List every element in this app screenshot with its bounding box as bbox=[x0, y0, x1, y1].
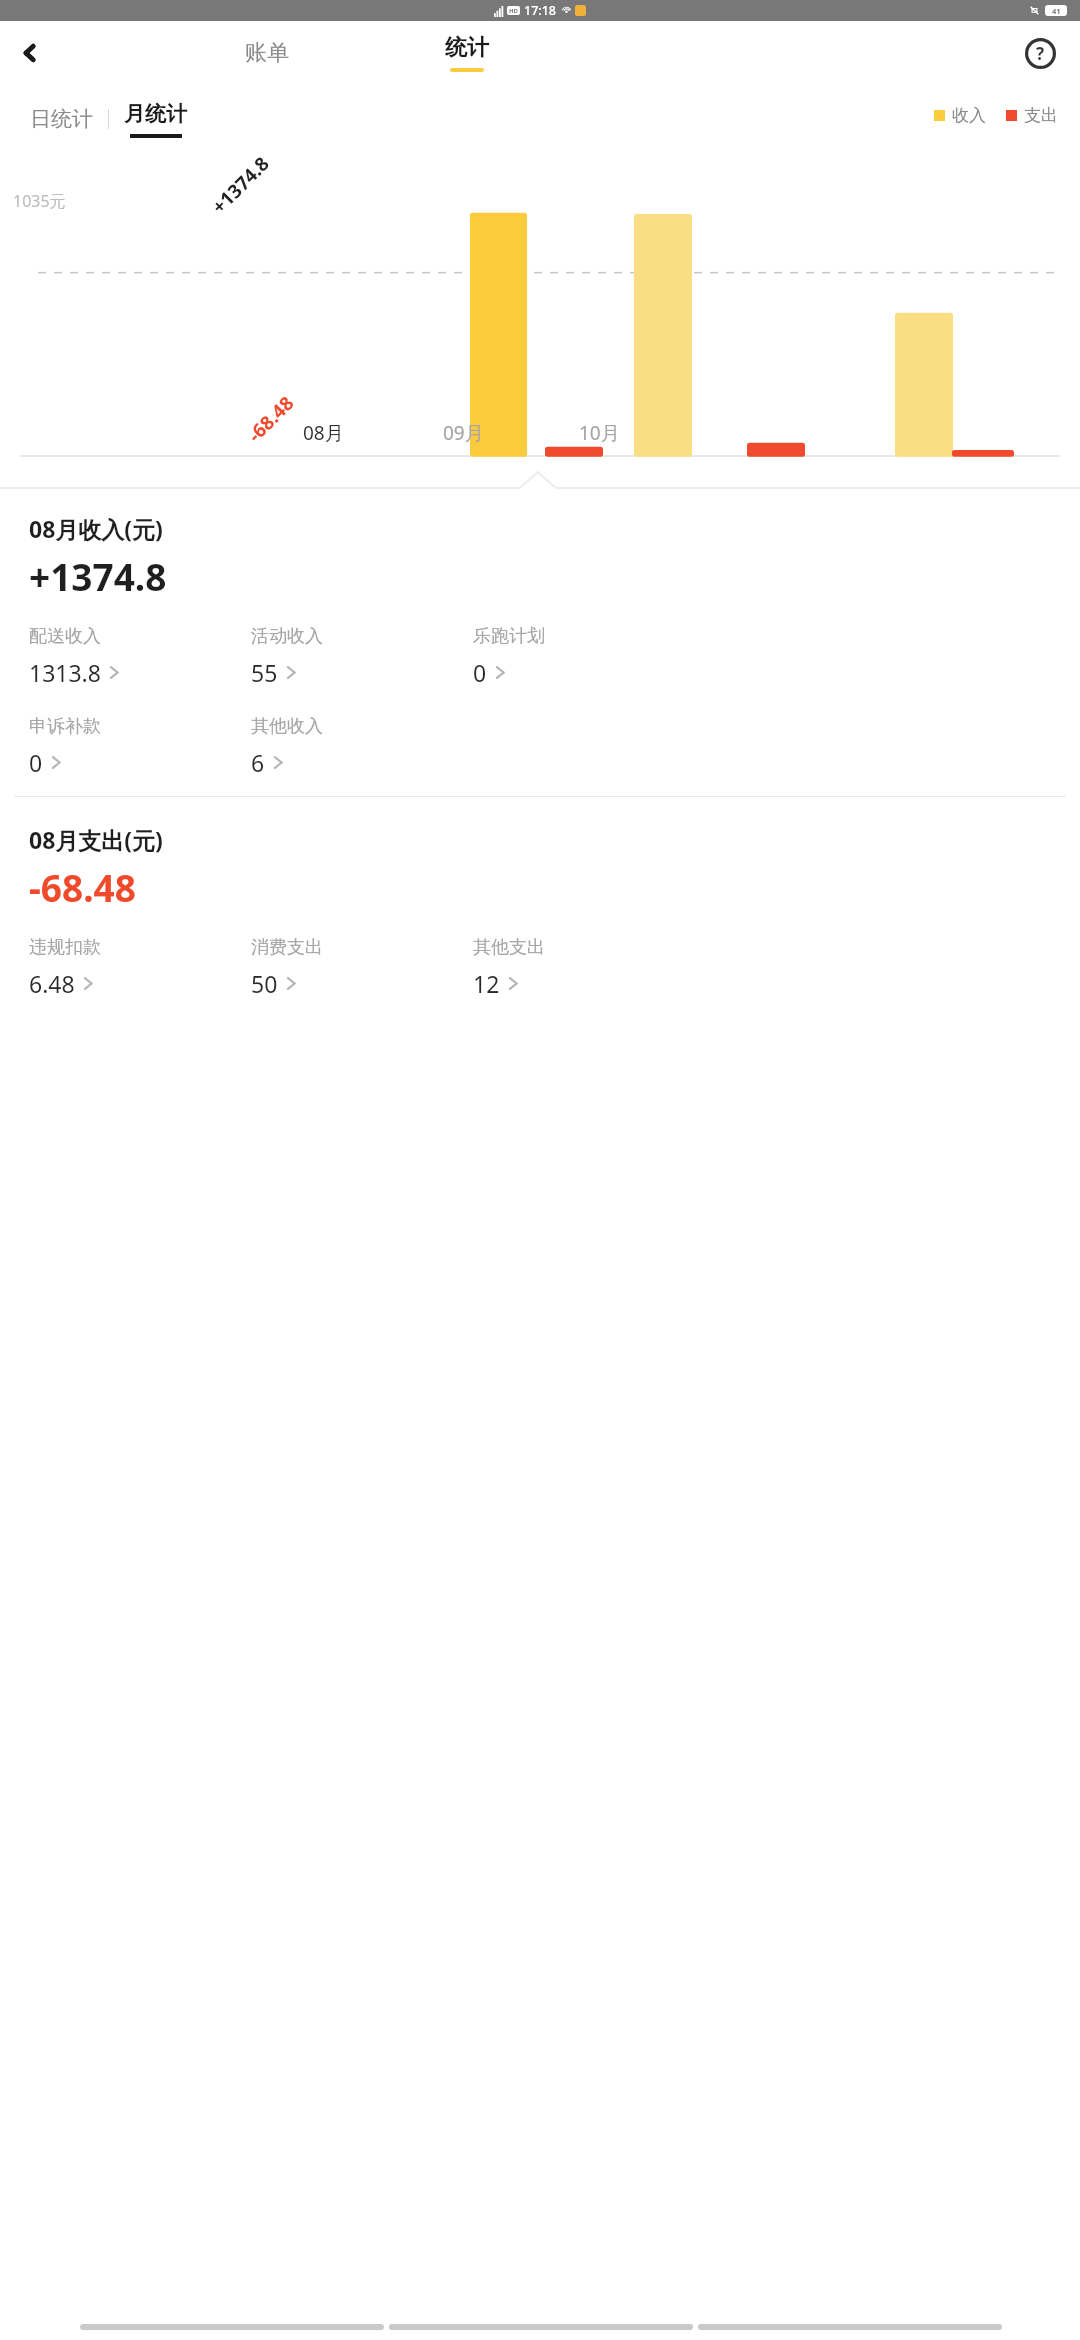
staticText: 08月收入(元) bbox=[29, 513, 163, 544]
button[interactable]: 配送收入 bbox=[29, 623, 251, 690]
button[interactable]: Back bbox=[6, 29, 54, 77]
staticText: 0 bbox=[473, 657, 487, 688]
staticText: -68.48 bbox=[29, 862, 136, 912]
staticText: 日统计 bbox=[30, 106, 93, 132]
staticText: 其他支出 bbox=[473, 936, 545, 959]
staticText: 6.48 bbox=[29, 968, 75, 999]
staticText: +1374.8 bbox=[206, 151, 275, 219]
staticText: 活动收入 bbox=[251, 625, 323, 648]
button[interactable]: Help bbox=[1018, 31, 1062, 75]
staticText: 其他收入 bbox=[251, 715, 323, 738]
button[interactable]: 其他支出 bbox=[473, 934, 695, 1001]
staticText: 消费支出 bbox=[251, 936, 323, 959]
staticText: 收入 bbox=[952, 105, 986, 126]
staticText: 乐跑计划 bbox=[473, 625, 545, 648]
staticText: 41 bbox=[1052, 6, 1061, 16]
staticText: 违规扣款 bbox=[29, 936, 101, 959]
staticText: ? bbox=[1036, 42, 1045, 65]
button[interactable]: 消费支出 bbox=[251, 934, 473, 1001]
staticText: 08月支出(元) bbox=[29, 824, 163, 855]
staticText: 配送收入 bbox=[29, 625, 101, 648]
button[interactable]: 10月 bbox=[553, 420, 645, 446]
staticText: 12 bbox=[473, 968, 500, 999]
button[interactable]: 08月 bbox=[277, 420, 369, 446]
staticText: 55 bbox=[251, 657, 278, 688]
staticText: 申诉补款 bbox=[29, 715, 101, 738]
button[interactable]: 乐跑计划 bbox=[473, 623, 695, 690]
button[interactable]: 月统计 bbox=[120, 101, 191, 138]
staticText: 10月 bbox=[579, 420, 620, 446]
button[interactable]: 账单 bbox=[233, 31, 301, 75]
staticText: 支出 bbox=[1024, 105, 1058, 126]
button[interactable]: 日统计 bbox=[26, 100, 97, 138]
button[interactable]: 其他收入 bbox=[251, 713, 473, 780]
staticText: 0 bbox=[29, 747, 43, 778]
staticText: 月统计 bbox=[124, 101, 187, 127]
button[interactable]: 活动收入 bbox=[251, 623, 473, 690]
staticText: 1313.8 bbox=[29, 657, 101, 688]
staticText: -68.48 bbox=[242, 390, 299, 448]
staticText: 6 bbox=[251, 747, 265, 778]
staticText: 统计 bbox=[445, 34, 489, 62]
button[interactable]: 09月 bbox=[417, 420, 509, 446]
staticText: 50 bbox=[251, 968, 278, 999]
staticText: 09月 bbox=[443, 420, 484, 446]
staticText: +1374.8 bbox=[29, 551, 167, 601]
staticText: 账单 bbox=[245, 39, 289, 67]
staticText: 08月 bbox=[303, 420, 344, 446]
button[interactable]: 申诉补款 bbox=[29, 713, 251, 780]
staticText: HD bbox=[509, 7, 518, 15]
staticText: 17:18 bbox=[524, 2, 557, 19]
staticText: 1035元 bbox=[13, 190, 66, 212]
button[interactable]: 违规扣款 bbox=[29, 934, 251, 1001]
button[interactable]: 统计 bbox=[433, 34, 501, 72]
